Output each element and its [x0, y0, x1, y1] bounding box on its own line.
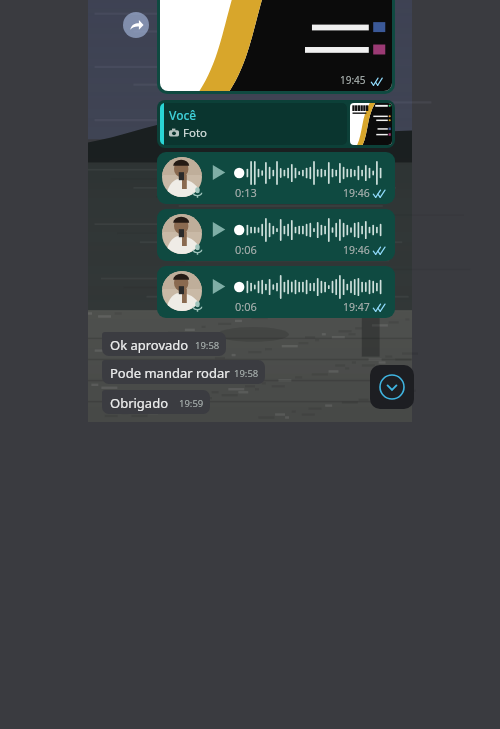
button[interactable]: Ok aprovado: [102, 332, 226, 356]
staticText: 19:58: [195, 339, 220, 352]
button[interactable]: Obrigado: [102, 390, 210, 414]
staticText: 0:06: [235, 299, 257, 314]
staticText: Obrigado: [110, 394, 169, 412]
staticText: 0:13: [235, 185, 257, 200]
staticText: 0:06: [235, 242, 257, 257]
staticText: Ok aprovado: [110, 336, 189, 354]
button[interactable]: Play voice message: [157, 266, 395, 318]
button[interactable]: 19:45: [160, 0, 392, 91]
staticText: Foto: [183, 125, 208, 141]
staticText: 19:46: [343, 186, 370, 200]
button[interactable]: Você: [157, 100, 395, 148]
staticText: 19:58: [234, 367, 259, 380]
staticText: 19:59: [179, 397, 204, 410]
button[interactable]: Play voice message: [157, 152, 395, 204]
button[interactable]: Scroll to bottom: [370, 365, 414, 409]
staticText: Pode mandar rodar: [110, 364, 230, 382]
button[interactable]: Play voice message: [157, 209, 395, 261]
staticText: 19:46: [343, 243, 370, 257]
other: Play voice message: [211, 222, 226, 237]
other: Play voice message: [211, 165, 226, 180]
staticText: 19:47: [343, 300, 370, 314]
button[interactable]: Forward: [123, 12, 149, 38]
button[interactable]: Pode mandar rodar: [102, 360, 265, 384]
staticText: 19:45: [340, 73, 366, 87]
other: Play voice message: [211, 279, 226, 294]
staticText: Você: [169, 107, 197, 123]
